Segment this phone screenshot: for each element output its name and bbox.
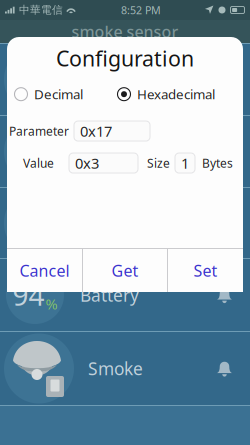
staticText: Parameter	[9, 123, 69, 139]
button[interactable]: Decimal	[14, 85, 83, 103]
staticText: 0x3	[75, 153, 99, 173]
staticText: Smoke	[88, 357, 143, 380]
staticText: Cancel	[19, 260, 69, 281]
button[interactable]: Humidity	[0, 116, 250, 187]
staticText: Bytes	[202, 155, 233, 171]
staticText: smoke sensor	[71, 21, 178, 42]
button[interactable]: 94	[0, 259, 250, 331]
button[interactable]: Hexadecimal	[117, 85, 243, 103]
button[interactable]: Set	[168, 249, 243, 292]
button[interactable]: Temperature	[0, 44, 250, 115]
staticText: Set	[193, 260, 217, 281]
staticText: Value	[23, 155, 54, 171]
staticText: Humidity	[88, 140, 162, 163]
button[interactable]: Cancel	[7, 249, 82, 292]
staticText: 0x17	[80, 121, 112, 141]
staticText: %	[45, 294, 57, 314]
staticText: 94	[12, 276, 44, 314]
staticText: Get	[111, 260, 138, 281]
staticText: Decimal	[34, 85, 83, 103]
staticText: Configuration	[56, 44, 194, 72]
staticText: 8:52 PM	[121, 3, 161, 17]
staticText: Size	[147, 155, 170, 171]
button[interactable]: Signal	[0, 188, 250, 258]
staticText: Battery	[80, 283, 139, 306]
button[interactable]: Smoke	[0, 332, 250, 405]
staticText: 中華電信	[19, 3, 63, 16]
staticText: 1	[181, 153, 189, 173]
staticText: Hexadecimal	[137, 85, 215, 103]
staticText: Temperature	[88, 68, 194, 91]
button[interactable]: Get	[83, 249, 167, 292]
